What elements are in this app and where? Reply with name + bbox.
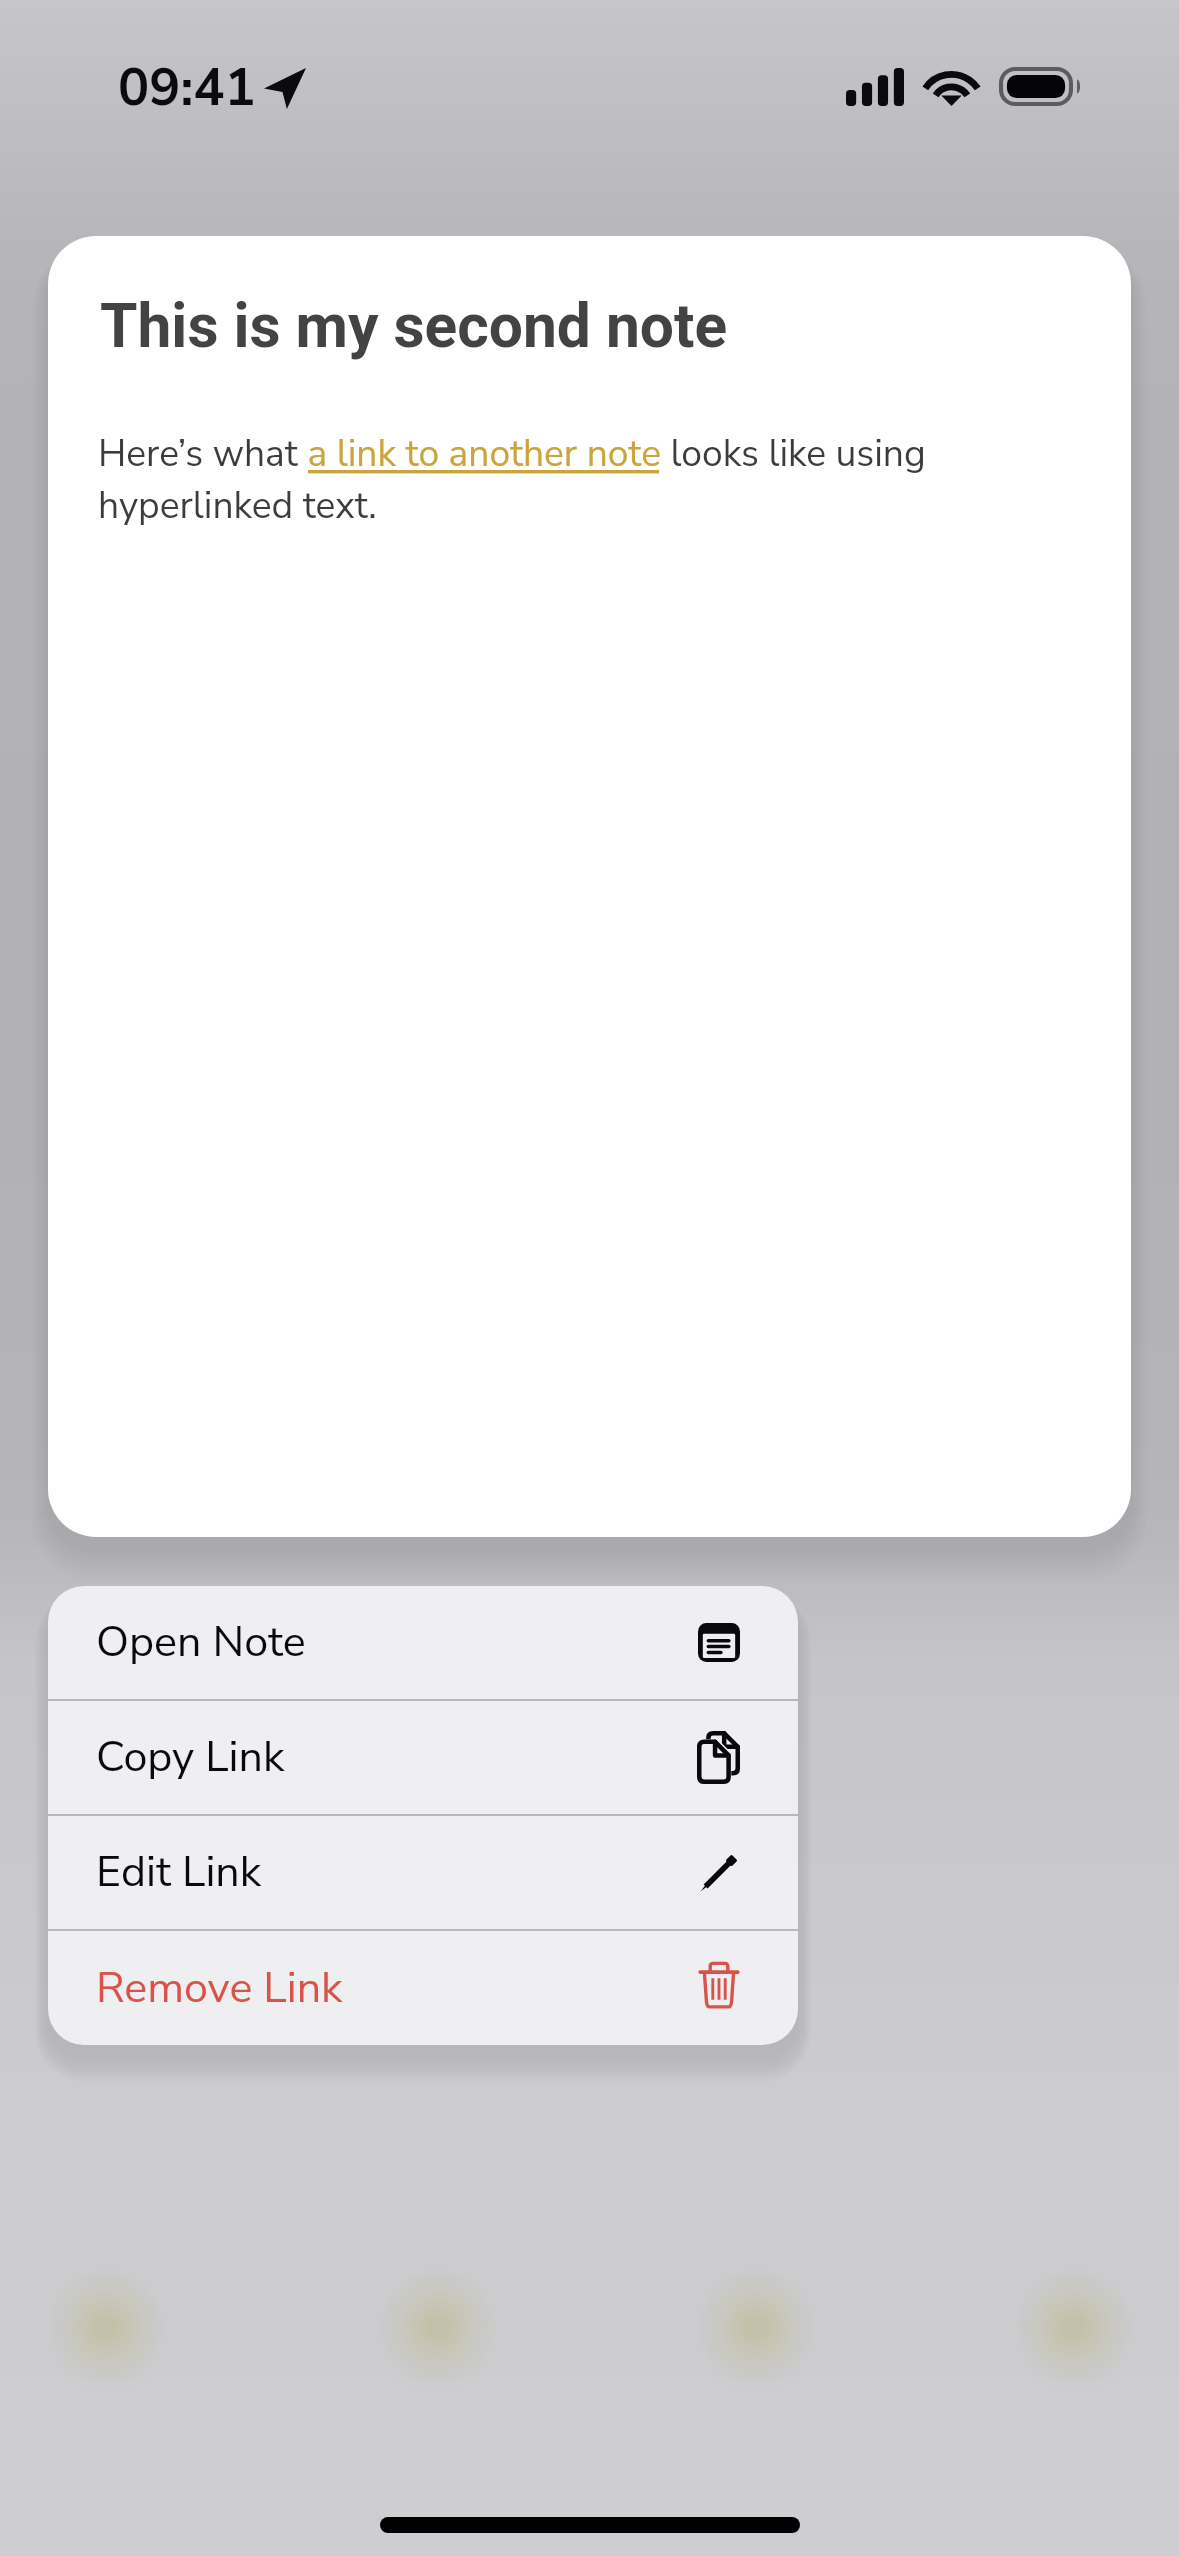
- staticText: Remove Link: [96, 1959, 343, 2018]
- staticText: Edit Link: [96, 1843, 262, 1902]
- other: Edit link: [700, 1856, 736, 1892]
- button[interactable]: Open Note: [48, 1586, 798, 1699]
- staticText: Here’s what a link to another note looks…: [98, 428, 978, 531]
- button[interactable]: Remove Link: [48, 1931, 798, 2045]
- button[interactable]: Copy Link: [48, 1701, 798, 1814]
- button[interactable]: Edit Link: [48, 1816, 798, 1929]
- other: Copy link: [697, 1731, 740, 1784]
- other: Open note: [698, 1623, 740, 1662]
- staticText: This is my second note: [100, 291, 728, 362]
- other: Remove link: [699, 1962, 739, 2009]
- staticText: Open Note: [96, 1613, 306, 1672]
- staticText: Copy Link: [96, 1728, 285, 1787]
- staticText: 09:41: [118, 52, 256, 123]
